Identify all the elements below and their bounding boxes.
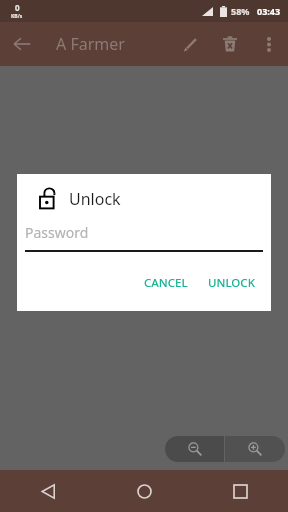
staticText: Unlock bbox=[69, 188, 121, 210]
button[interactable]: UNLOCK bbox=[200, 269, 263, 297]
button[interactable]: Zoom out bbox=[165, 436, 224, 462]
button[interactable]: Recent apps bbox=[192, 470, 288, 512]
staticText: CANCEL bbox=[144, 275, 188, 291]
button[interactable]: Delete bbox=[210, 24, 250, 64]
staticText: KB/s bbox=[11, 13, 23, 20]
button[interactable]: Password bbox=[25, 223, 263, 252]
staticText: 03:43 bbox=[257, 5, 281, 17]
button[interactable]: Zoom in bbox=[225, 436, 285, 462]
button[interactable]: Back bbox=[0, 470, 96, 512]
button[interactable]: More options bbox=[250, 25, 288, 63]
staticText: 0 bbox=[15, 2, 20, 13]
button[interactable]: CANCEL bbox=[136, 269, 196, 297]
button[interactable]: Navigate up bbox=[0, 22, 44, 66]
button[interactable]: Home bbox=[96, 470, 192, 512]
staticText: A Farmer bbox=[56, 33, 170, 55]
staticText: UNLOCK bbox=[208, 275, 255, 291]
button[interactable]: Edit bbox=[170, 24, 210, 64]
staticText: Password bbox=[25, 223, 89, 242]
staticText: 58% bbox=[231, 5, 250, 17]
